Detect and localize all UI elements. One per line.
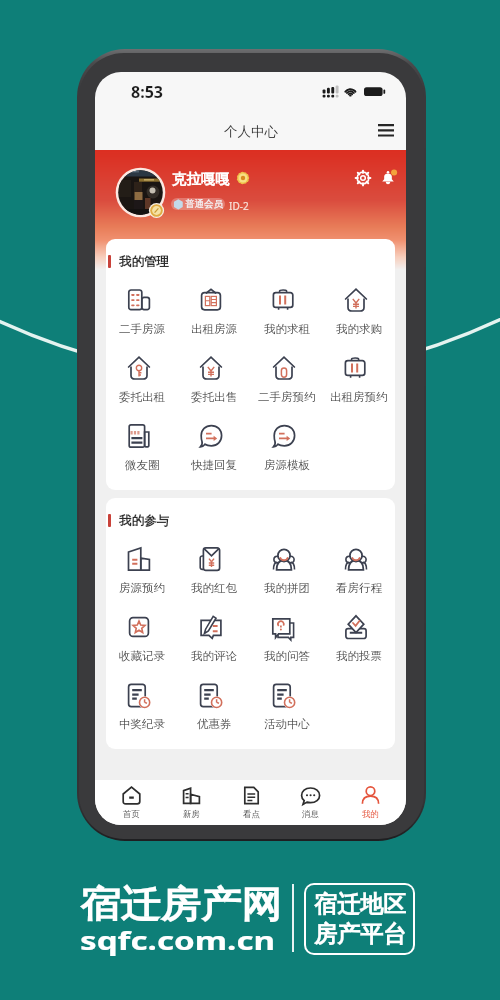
button[interactable]: 我的求购 [323,288,395,344]
button[interactable]: Settings [352,167,374,189]
staticText: 我的参与 [119,513,169,529]
staticText: 看点 [243,809,260,820]
staticText: 克拉嘎嘎 [172,170,230,188]
staticText: 活动中心 [264,717,310,731]
button[interactable]: 看点 [224,780,278,824]
staticText: 我的管理 [119,254,169,270]
button[interactable]: 优惠券 [178,683,250,739]
staticText: 房源预约 [119,581,165,595]
staticText: 宿迁地区 [314,890,406,919]
button[interactable]: 房源模板 [251,424,323,480]
staticText: 我的问答 [264,649,310,663]
staticText: 我的求购 [336,322,382,336]
button[interactable]: 我的投票 [323,615,395,671]
button[interactable]: Menu [371,115,401,145]
button[interactable]: 二手房预约 [251,356,323,412]
button[interactable]: 看房行程 [323,547,395,603]
staticText: 我的拼团 [264,581,310,595]
staticText: 中奖纪录 [119,717,165,731]
staticText: 普通会员 [185,198,223,210]
button[interactable]: 二手房源 [106,288,178,344]
button[interactable]: 首页 [104,780,158,824]
staticText: 房源模板 [264,458,310,472]
staticText: 我的求租 [264,322,310,336]
button[interactable]: 我的拼团 [251,547,323,603]
button[interactable]: 我的问答 [251,615,323,671]
button[interactable]: 我的评论 [178,615,250,671]
staticText: 快捷回复 [191,458,237,472]
button[interactable]: 微友圈 [106,424,178,480]
staticText: ID-2 [229,199,249,213]
staticText: 二手房源 [119,322,165,336]
button[interactable]: 我的红包 [178,547,250,603]
staticText: sqfc.com.cn [80,923,276,958]
button[interactable]: 委托出售 [178,356,250,412]
staticText: 收藏记录 [119,649,165,663]
staticText: 我的 [362,809,379,820]
staticText: 出租房源 [191,322,237,336]
staticText: 二手房预约 [258,390,316,404]
staticText: 我的评论 [191,649,237,663]
staticText: 委托出租 [119,390,165,404]
staticText: 房产平台 [314,920,406,949]
staticText: 出租房预约 [330,390,388,404]
button[interactable]: 消息 [283,780,337,824]
staticText: 8:53 [131,81,163,103]
staticText: 新房 [183,809,200,820]
button[interactable]: 中奖纪录 [106,683,178,739]
button[interactable]: 活动中心 [251,683,323,739]
staticText: 优惠券 [197,717,232,731]
button[interactable]: 出租房源 [178,288,250,344]
button[interactable]: 快捷回复 [178,424,250,480]
button[interactable]: 委托出租 [106,356,178,412]
button[interactable]: 出租房预约 [323,356,395,412]
staticText: 我的投票 [336,649,382,663]
staticText: 消息 [302,809,319,820]
staticText: 宿迁房产网 [80,881,281,927]
staticText: 首页 [123,809,140,820]
button[interactable]: Notifications [377,167,399,189]
button[interactable]: 新房 [164,780,218,824]
button[interactable]: 我的 [343,780,397,824]
staticText: 我的红包 [191,581,237,595]
staticText: 个人中心 [224,123,278,140]
button[interactable]: 收藏记录 [106,615,178,671]
staticText: 看房行程 [336,581,382,595]
button[interactable]: 房源预约 [106,547,178,603]
button[interactable]: Avatar [115,167,166,218]
button[interactable]: 我的求租 [251,288,323,344]
staticText: 委托出售 [191,390,237,404]
staticText: 微友圈 [125,458,160,472]
